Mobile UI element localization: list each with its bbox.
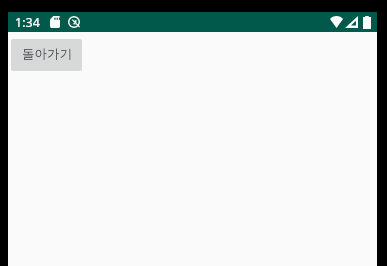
staticText: 돌아가기 [22, 46, 72, 62]
staticText: 1:34 [15, 14, 40, 31]
button[interactable]: 돌아가기 [11, 39, 82, 71]
